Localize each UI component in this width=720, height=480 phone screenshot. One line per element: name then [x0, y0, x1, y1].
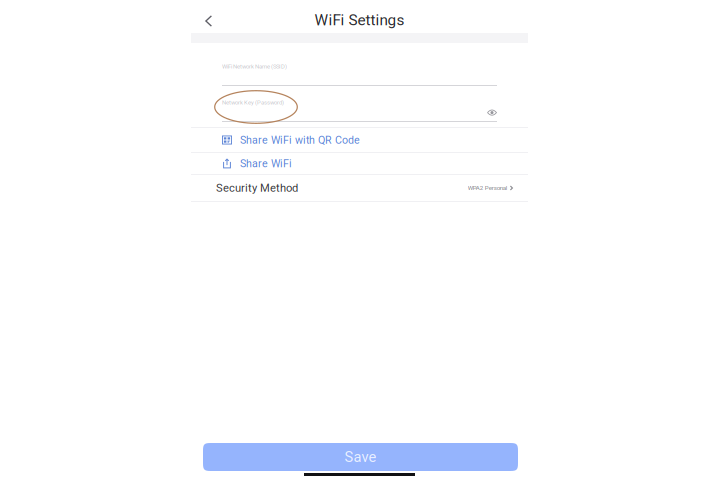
button[interactable]: Share WiFi with QR Code — [191, 128, 528, 152]
staticText: Network Key (Password) — [222, 99, 284, 106]
button[interactable]: Back — [191, 0, 224, 33]
staticText: Share WiFi — [240, 157, 292, 170]
staticText: Save — [344, 448, 376, 466]
button[interactable]: Save — [191, 443, 528, 471]
button[interactable]: Share WiFi — [191, 153, 528, 174]
button[interactable]: Security Method — [191, 175, 528, 201]
staticText: Security Method — [216, 181, 298, 194]
staticText: WiFi Settings — [314, 11, 404, 29]
staticText: WPA2 Personal — [468, 184, 507, 192]
staticText: Share WiFi with QR Code — [240, 134, 360, 146]
staticText: WiFi Network Name (SSID) — [222, 63, 287, 70]
